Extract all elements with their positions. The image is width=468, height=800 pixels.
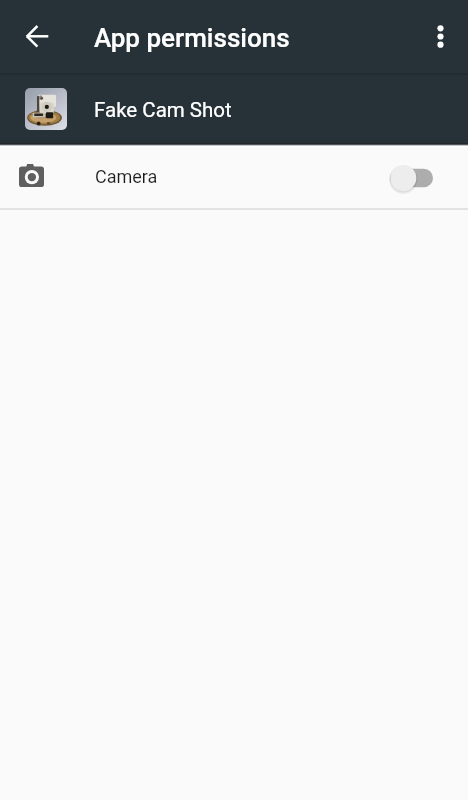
staticText: Camera xyxy=(95,166,158,187)
button[interactable]: Camera xyxy=(0,148,468,208)
button[interactable]: Camera permission toggle xyxy=(386,160,438,196)
button[interactable]: More options xyxy=(416,12,464,60)
staticText: App permissions xyxy=(94,23,290,53)
staticText: Fake Cam Shot xyxy=(94,98,232,122)
button[interactable]: Fake Cam Shot xyxy=(0,73,468,145)
button[interactable]: Navigate up xyxy=(13,12,61,60)
